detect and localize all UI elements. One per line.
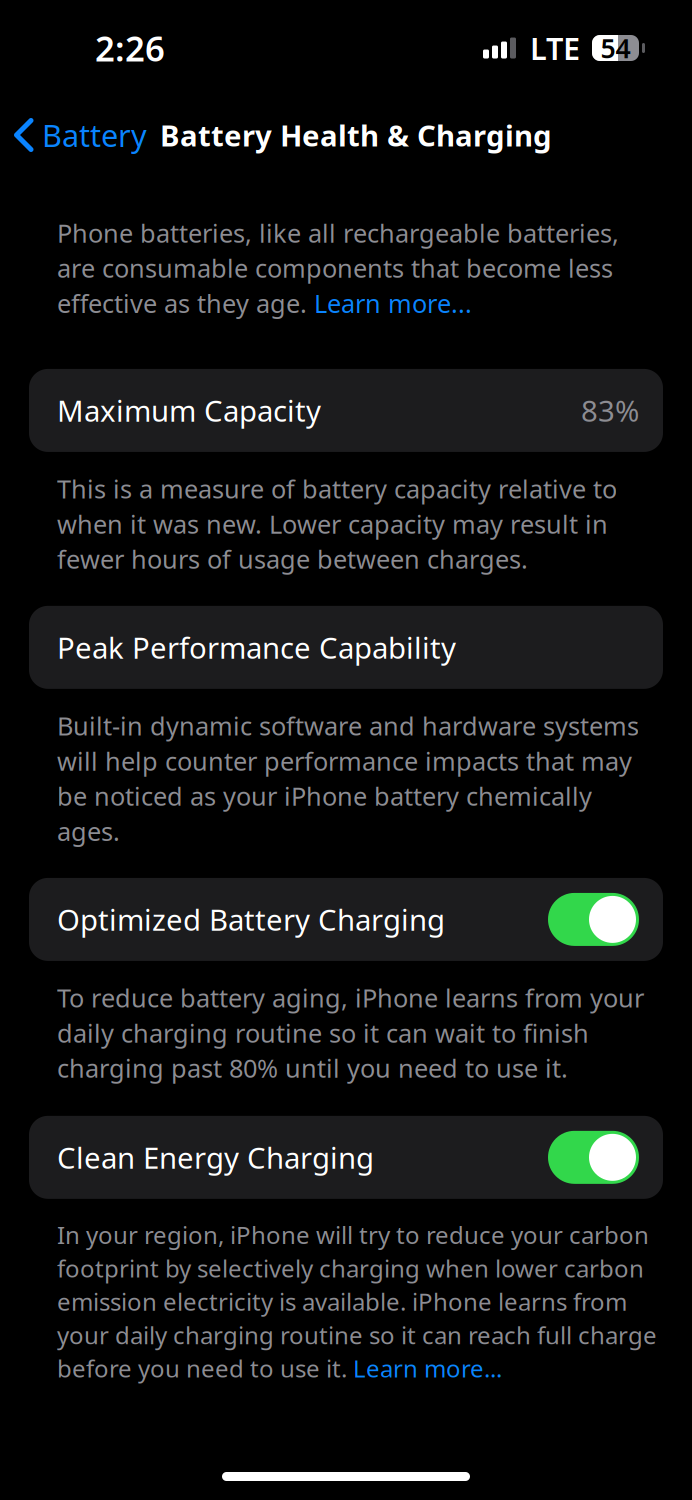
- staticText: Optimized Battery Charging: [57, 900, 445, 939]
- button[interactable]: Optimized Battery Charging: [0, 878, 663, 961]
- button[interactable]: Peak Performance Capability: [0, 606, 663, 689]
- staticText: 83%: [581, 391, 639, 430]
- staticText: 2:26: [95, 25, 165, 71]
- button[interactable]: Clean Energy Charging: [0, 1116, 663, 1199]
- staticText: Phone batteries, like all rechargeable b…: [57, 216, 619, 320]
- staticText: Battery: [42, 115, 147, 155]
- staticText: In your region, iPhone will try to reduc…: [57, 1219, 657, 1384]
- staticText: Clean Energy Charging: [57, 1138, 374, 1177]
- staticText: Battery Health & Charging: [160, 115, 552, 154]
- staticText: Built-in dynamic software and hardware s…: [57, 709, 639, 848]
- staticText: To reduce battery aging, iPhone learns f…: [57, 981, 644, 1085]
- staticText: This is a measure of battery capacity re…: [57, 472, 617, 576]
- staticText: Maximum Capacity: [57, 391, 321, 430]
- staticText: Peak Performance Capability: [57, 628, 456, 667]
- button[interactable]: Battery: [0, 104, 160, 166]
- staticText: LTE: [530, 28, 580, 68]
- staticText: 54: [600, 30, 630, 66]
- button[interactable]: Maximum Capacity: [0, 369, 663, 452]
